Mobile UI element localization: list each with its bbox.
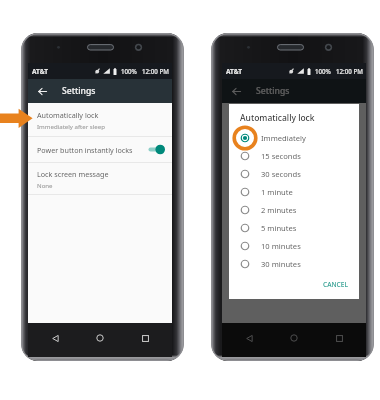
button[interactable]: Immediately <box>229 129 359 147</box>
button[interactable]: Back <box>241 330 257 346</box>
staticText: Lock screen message <box>37 169 109 179</box>
staticText: AT&T <box>32 67 48 76</box>
staticText: 10 minutes <box>261 241 301 251</box>
staticText: Settings <box>256 85 290 97</box>
button[interactable]: 30 seconds <box>229 165 359 183</box>
button[interactable]: 30 minutes <box>229 255 359 273</box>
button[interactable]: 15 seconds <box>229 147 359 165</box>
button[interactable]: Recent apps <box>137 330 153 346</box>
staticText: CANCEL <box>323 280 349 289</box>
staticText: 2 minutes <box>261 205 297 215</box>
staticText: None <box>37 181 53 189</box>
staticText: 30 seconds <box>261 169 301 179</box>
button[interactable]: CANCEL <box>229 280 359 299</box>
staticText: Automatically lock <box>240 112 315 124</box>
button[interactable]: Navigate up <box>222 79 366 103</box>
button[interactable]: 5 minutes <box>229 219 359 237</box>
staticText: 100% <box>315 67 331 75</box>
button[interactable]: Navigate up <box>34 83 50 99</box>
button[interactable]: Recent apps <box>331 330 347 346</box>
button[interactable]: 10 minutes <box>229 237 359 255</box>
button[interactable]: Lock screen message <box>28 163 172 194</box>
staticText: Power button instantly locks <box>37 145 133 155</box>
button[interactable]: Home <box>286 330 302 346</box>
staticText: 30 minutes <box>261 259 301 269</box>
button[interactable]: Home <box>92 330 108 346</box>
staticText: Immediately <box>261 133 306 143</box>
staticText: AT&T <box>226 67 242 76</box>
staticText: 15 seconds <box>261 151 301 161</box>
button[interactable]: Power button instantly locks <box>28 137 172 162</box>
staticText: Settings <box>62 85 96 97</box>
staticText: Immediately after sleep <box>37 122 105 130</box>
button[interactable]: Navigate up <box>28 79 172 103</box>
button[interactable]: 1 minute <box>229 183 359 201</box>
button[interactable]: 2 minutes <box>229 201 359 219</box>
staticText: 5 minutes <box>261 223 297 233</box>
staticText: 12:00 PM <box>336 67 363 75</box>
staticText: 100% <box>121 67 137 75</box>
button[interactable]: Back <box>47 330 63 346</box>
staticText: 1 minute <box>261 187 293 197</box>
staticText: 12:00 PM <box>142 67 169 75</box>
staticText: Automatically lock <box>37 110 99 120</box>
button[interactable]: Automatically lock <box>28 103 172 136</box>
button[interactable]: Navigate up <box>228 83 244 99</box>
